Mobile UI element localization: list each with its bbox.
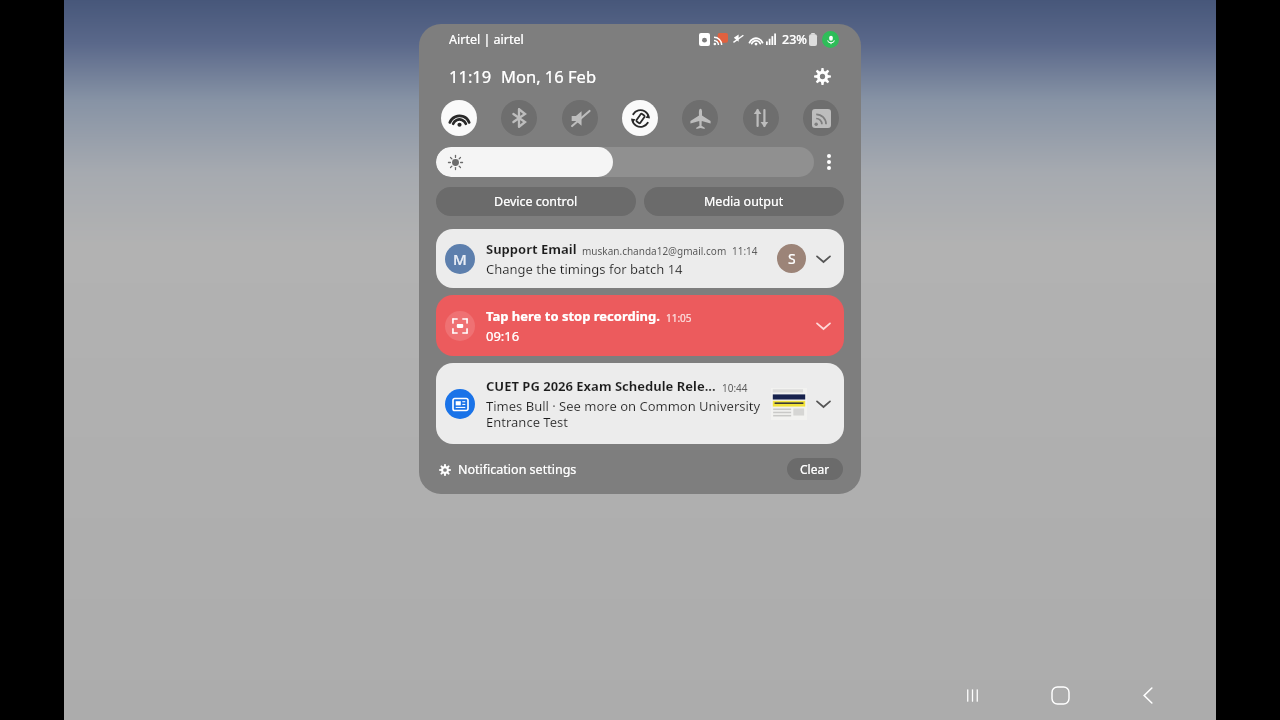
staticText: CUET PG 2026 Exam Schedule Rele...: [486, 377, 716, 395]
button[interactable]: Settings: [807, 61, 837, 91]
staticText: Mon, 16 Feb: [501, 65, 597, 87]
button[interactable]: Notification settings: [439, 461, 577, 478]
staticText: Clear: [800, 461, 830, 477]
button[interactable]: Tap here to stop recording.: [445, 295, 833, 356]
button[interactable]: Hotspot: [803, 100, 839, 136]
button[interactable]: M: [445, 229, 833, 288]
button[interactable]: More brightness options: [814, 147, 844, 177]
staticText: S: [788, 249, 796, 268]
button[interactable]: Sound off: [562, 100, 598, 136]
button[interactable]: Device control: [436, 187, 636, 216]
button[interactable]: Recent apps: [948, 671, 996, 719]
button[interactable]: Expand: [813, 249, 833, 269]
button[interactable]: Back: [1124, 671, 1172, 719]
button[interactable]: Home: [1036, 671, 1084, 719]
button[interactable]: Mobile data: [743, 100, 779, 136]
staticText: 11:05: [666, 311, 692, 325]
staticText: Media output: [704, 193, 784, 210]
staticText: 10:44: [722, 381, 748, 395]
staticText: M: [453, 249, 467, 269]
staticText: 11:14: [732, 244, 758, 258]
button[interactable]: Auto rotate: [622, 100, 658, 136]
button[interactable]: Media output: [644, 187, 844, 216]
staticText: Device control: [494, 193, 578, 210]
button[interactable]: Clear: [787, 458, 843, 480]
staticText: 11:19: [449, 65, 492, 87]
staticText: Support Email: [486, 240, 577, 258]
button[interactable]: CUET PG 2026 Exam Schedule Rele...: [445, 363, 833, 444]
button[interactable]: Expand: [813, 316, 833, 336]
staticText: Times Bull · See more on Common Universi…: [486, 397, 765, 430]
staticText: Change the timings for batch 14: [486, 260, 683, 278]
staticText: Notification settings: [458, 461, 577, 478]
staticText: Tap here to stop recording.: [486, 307, 660, 325]
staticText: 09:16: [486, 327, 520, 345]
staticText: 23%: [782, 31, 807, 48]
button[interactable]: Expand: [813, 394, 833, 414]
staticText: muskan.chanda12@gmail.com: [582, 244, 727, 258]
staticText: Airtel | airtel: [449, 31, 524, 48]
button[interactable]: Wi-Fi: [441, 100, 477, 136]
button[interactable]: Bluetooth: [501, 100, 537, 136]
button[interactable]: Airplane mode: [682, 100, 718, 136]
button[interactable]: Brightness: [436, 147, 814, 177]
